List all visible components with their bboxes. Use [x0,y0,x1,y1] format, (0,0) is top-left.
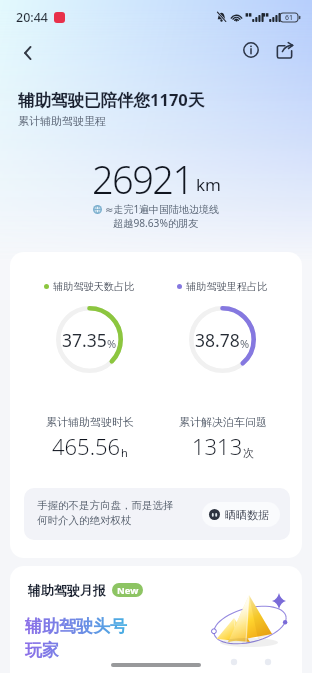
staticText: 辅助驾驶已陪伴您1170天 [18,88,205,111]
staticText: 累计解决泊车问题 [179,415,267,429]
staticText: 辅助驾驶月报 [28,582,106,598]
staticText: h [121,445,128,460]
staticText: 61 [285,13,294,22]
staticText: 26921 [92,153,193,205]
staticText: 38.78 [195,328,240,352]
button[interactable]: 晒晒数据 [202,502,280,527]
button[interactable]: Back [12,37,44,69]
staticText: 辅助驾驶天数占比 [53,280,135,293]
staticText: 465.56 [52,431,121,461]
staticText: 晒晒数据 [225,508,269,522]
button[interactable]: 辅助驾驶月报 [10,566,302,673]
staticText: 超越98.63%的朋友 [113,216,199,230]
staticText: 次 [243,446,254,460]
staticText: 累计辅助驾驶时长 [46,415,134,429]
button[interactable]: Info [237,36,265,64]
button[interactable]: Share [270,36,298,64]
staticText: 辅助驾驶里程占比 [186,280,268,293]
staticText: 37.35 [62,328,107,352]
staticText: New [117,584,139,597]
staticText: km [196,173,221,196]
staticText: 累计辅助驾驶里程 [18,114,106,128]
staticText: % [240,336,250,351]
staticText: % [107,336,117,351]
staticText: 20:44 [16,9,49,26]
staticText: 1313 [192,431,243,461]
staticText: 辅助驾驶头号 玩家 [25,616,127,661]
staticText: 手握的不是方向盘，而是选择 何时介入的绝对权杖 [37,499,174,527]
staticText: ≈走完1遍中国陆地边境线 [105,202,220,216]
